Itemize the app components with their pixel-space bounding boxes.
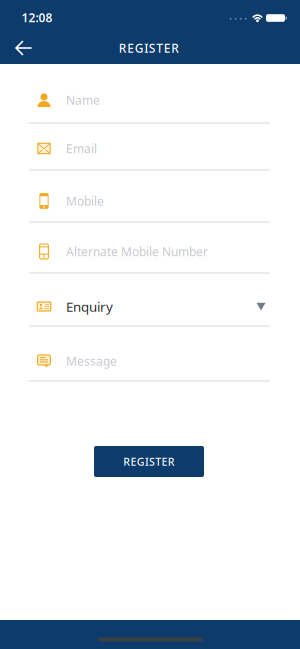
staticText: Message xyxy=(66,353,117,369)
staticText: REGISTER xyxy=(123,454,175,469)
staticText: 12:08 xyxy=(21,9,52,25)
button[interactable]: Email xyxy=(29,126,271,170)
staticText: Name xyxy=(66,92,100,108)
staticText: Mobile xyxy=(66,193,104,209)
button[interactable]: REGISTER xyxy=(94,446,204,477)
button[interactable]: Back xyxy=(5,30,41,66)
staticText: Alternate Mobile Number xyxy=(66,243,208,259)
staticText: Enquiry xyxy=(66,298,113,315)
button[interactable]: Enquiry xyxy=(29,284,271,328)
staticText: REGISTER xyxy=(119,40,179,56)
button[interactable]: Mobile xyxy=(29,179,271,223)
button[interactable]: Alternate Mobile Number xyxy=(29,229,271,273)
button[interactable]: Message xyxy=(29,339,271,383)
button[interactable]: Name xyxy=(29,78,271,122)
staticText: Email xyxy=(66,140,97,156)
